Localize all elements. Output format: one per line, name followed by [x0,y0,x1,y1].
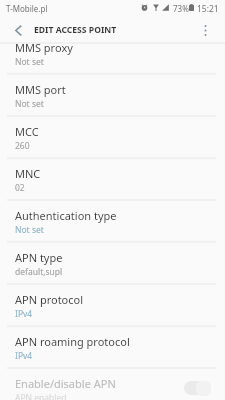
button[interactable]: MMS port [0,75,225,117]
staticText: MNC [15,166,41,181]
staticText: Not set [15,56,44,68]
staticText: default,supl [15,266,63,278]
staticText: APN protocol [15,292,84,307]
button[interactable]: APN type [0,243,225,285]
staticText: 02 [15,182,25,194]
other: Enable/disable APN [184,380,211,396]
button[interactable]: APN roaming protocol [0,327,225,369]
staticText: Not set [15,224,44,236]
staticText: Not set [15,98,44,110]
staticText: T-Mobile.pl [6,3,48,14]
button[interactable]: MCC [0,117,225,159]
staticText: MCC [15,124,39,139]
button[interactable]: More options [192,18,218,42]
button[interactable]: Authentication type [0,201,225,243]
staticText: APN enabled [15,392,67,400]
staticText: APN type [15,250,63,265]
staticText: MMS port [15,82,66,97]
button[interactable]: Navigate up [4,18,32,42]
button[interactable]: Enable/disable APN [0,369,225,400]
staticText: Authentication type [15,208,117,223]
button[interactable]: MMS proxy [0,33,225,75]
staticText: IPv4 [15,308,33,320]
staticText: EDIT ACCESS POINT [34,24,117,36]
staticText: MMS proxy [15,40,73,55]
staticText: APN roaming protocol [15,334,130,349]
button[interactable]: APN protocol [0,285,225,327]
staticText: 15:21 [197,3,219,15]
staticText: 73% [173,3,189,14]
staticText: IPv4 [15,350,33,362]
staticText: Enable/disable APN [15,376,116,391]
button[interactable]: MNC [0,159,225,201]
staticText: 260 [15,140,30,152]
